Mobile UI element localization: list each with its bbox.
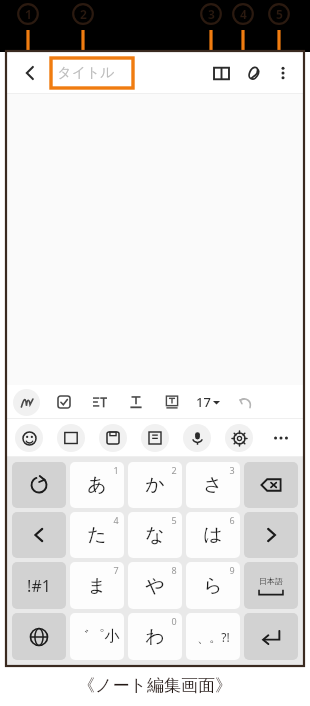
staticText: ゛゜小 bbox=[74, 627, 120, 646]
button[interactable]: ら bbox=[186, 562, 240, 609]
staticText: あ bbox=[87, 473, 107, 497]
button[interactable]: た bbox=[70, 512, 124, 558]
button[interactable]: や bbox=[128, 562, 182, 609]
button[interactable]: Attach bbox=[237, 57, 269, 89]
button[interactable]: Undo bbox=[232, 389, 258, 415]
staticText: 0 bbox=[171, 615, 177, 627]
button[interactable]: left bbox=[12, 512, 66, 558]
staticText: 8 bbox=[171, 564, 177, 576]
button[interactable]: right bbox=[244, 512, 298, 558]
button[interactable]: Checklist bbox=[52, 390, 76, 414]
button[interactable]: Clipboard bbox=[99, 424, 127, 452]
staticText: な bbox=[145, 523, 165, 547]
staticText: 日本語 bbox=[259, 576, 283, 586]
staticText: わ bbox=[145, 625, 165, 649]
staticText: 4 bbox=[113, 514, 119, 526]
button[interactable]: Voice input bbox=[183, 424, 211, 452]
button[interactable]: More bbox=[267, 424, 295, 452]
button[interactable]: は bbox=[186, 512, 240, 558]
staticText: 《ノート編集画面》 bbox=[78, 675, 232, 696]
staticText: か bbox=[145, 473, 165, 497]
staticText: は bbox=[203, 523, 223, 547]
staticText: タイトル bbox=[57, 64, 115, 82]
button[interactable]: Text format bbox=[124, 390, 148, 414]
staticText: !#1 bbox=[27, 575, 51, 597]
button[interactable]: あ bbox=[70, 462, 124, 508]
staticText: 2 bbox=[171, 464, 177, 476]
button[interactable]: redo bbox=[12, 462, 66, 508]
staticText: 3 bbox=[208, 6, 215, 22]
button[interactable]: More options bbox=[269, 59, 297, 87]
button[interactable]: Paragraph style bbox=[88, 390, 112, 414]
staticText: 1 bbox=[113, 464, 119, 476]
button[interactable]: Reading mode bbox=[205, 57, 237, 89]
button[interactable]: Emoji bbox=[15, 424, 43, 452]
staticText: 6 bbox=[229, 514, 235, 526]
staticText: 17 bbox=[196, 393, 211, 411]
button[interactable]: な bbox=[128, 512, 182, 558]
button[interactable]: !#1 bbox=[12, 562, 66, 609]
staticText: 、。?! bbox=[197, 629, 230, 645]
staticText: 5 bbox=[276, 6, 283, 22]
button[interactable]: か bbox=[128, 462, 182, 508]
button[interactable]: space bbox=[244, 562, 298, 609]
staticText: さ bbox=[203, 473, 223, 497]
button[interactable]: ま bbox=[70, 562, 124, 609]
staticText: や bbox=[145, 574, 165, 598]
staticText: 3 bbox=[229, 464, 235, 476]
button[interactable]: del bbox=[244, 462, 298, 508]
staticText: 1 bbox=[25, 6, 32, 22]
staticText: ま bbox=[87, 574, 107, 598]
staticText: 4 bbox=[240, 6, 247, 22]
button[interactable]: globe bbox=[12, 613, 66, 660]
button[interactable]: Back bbox=[13, 56, 47, 90]
button[interactable]: Symbols bbox=[57, 424, 85, 452]
staticText: 7 bbox=[113, 564, 119, 576]
button[interactable]: 、。?! bbox=[186, 613, 240, 660]
button[interactable]: タイトル bbox=[51, 58, 133, 88]
button[interactable]: Translate bbox=[141, 424, 169, 452]
staticText: ら bbox=[203, 574, 223, 598]
button[interactable]: Handwriting bbox=[13, 389, 40, 416]
button[interactable]: Text box bbox=[160, 390, 184, 414]
button[interactable]: ゛゜小 bbox=[70, 613, 124, 660]
button[interactable]: 17 bbox=[194, 393, 222, 411]
staticText: た bbox=[87, 523, 107, 547]
button[interactable]: Keyboard settings bbox=[225, 424, 253, 452]
button[interactable]: わ bbox=[128, 613, 182, 660]
staticText: 9 bbox=[229, 564, 235, 576]
button[interactable]: さ bbox=[186, 462, 240, 508]
staticText: 2 bbox=[80, 6, 87, 22]
button[interactable]: enter bbox=[244, 613, 298, 660]
staticText: 5 bbox=[171, 514, 177, 526]
